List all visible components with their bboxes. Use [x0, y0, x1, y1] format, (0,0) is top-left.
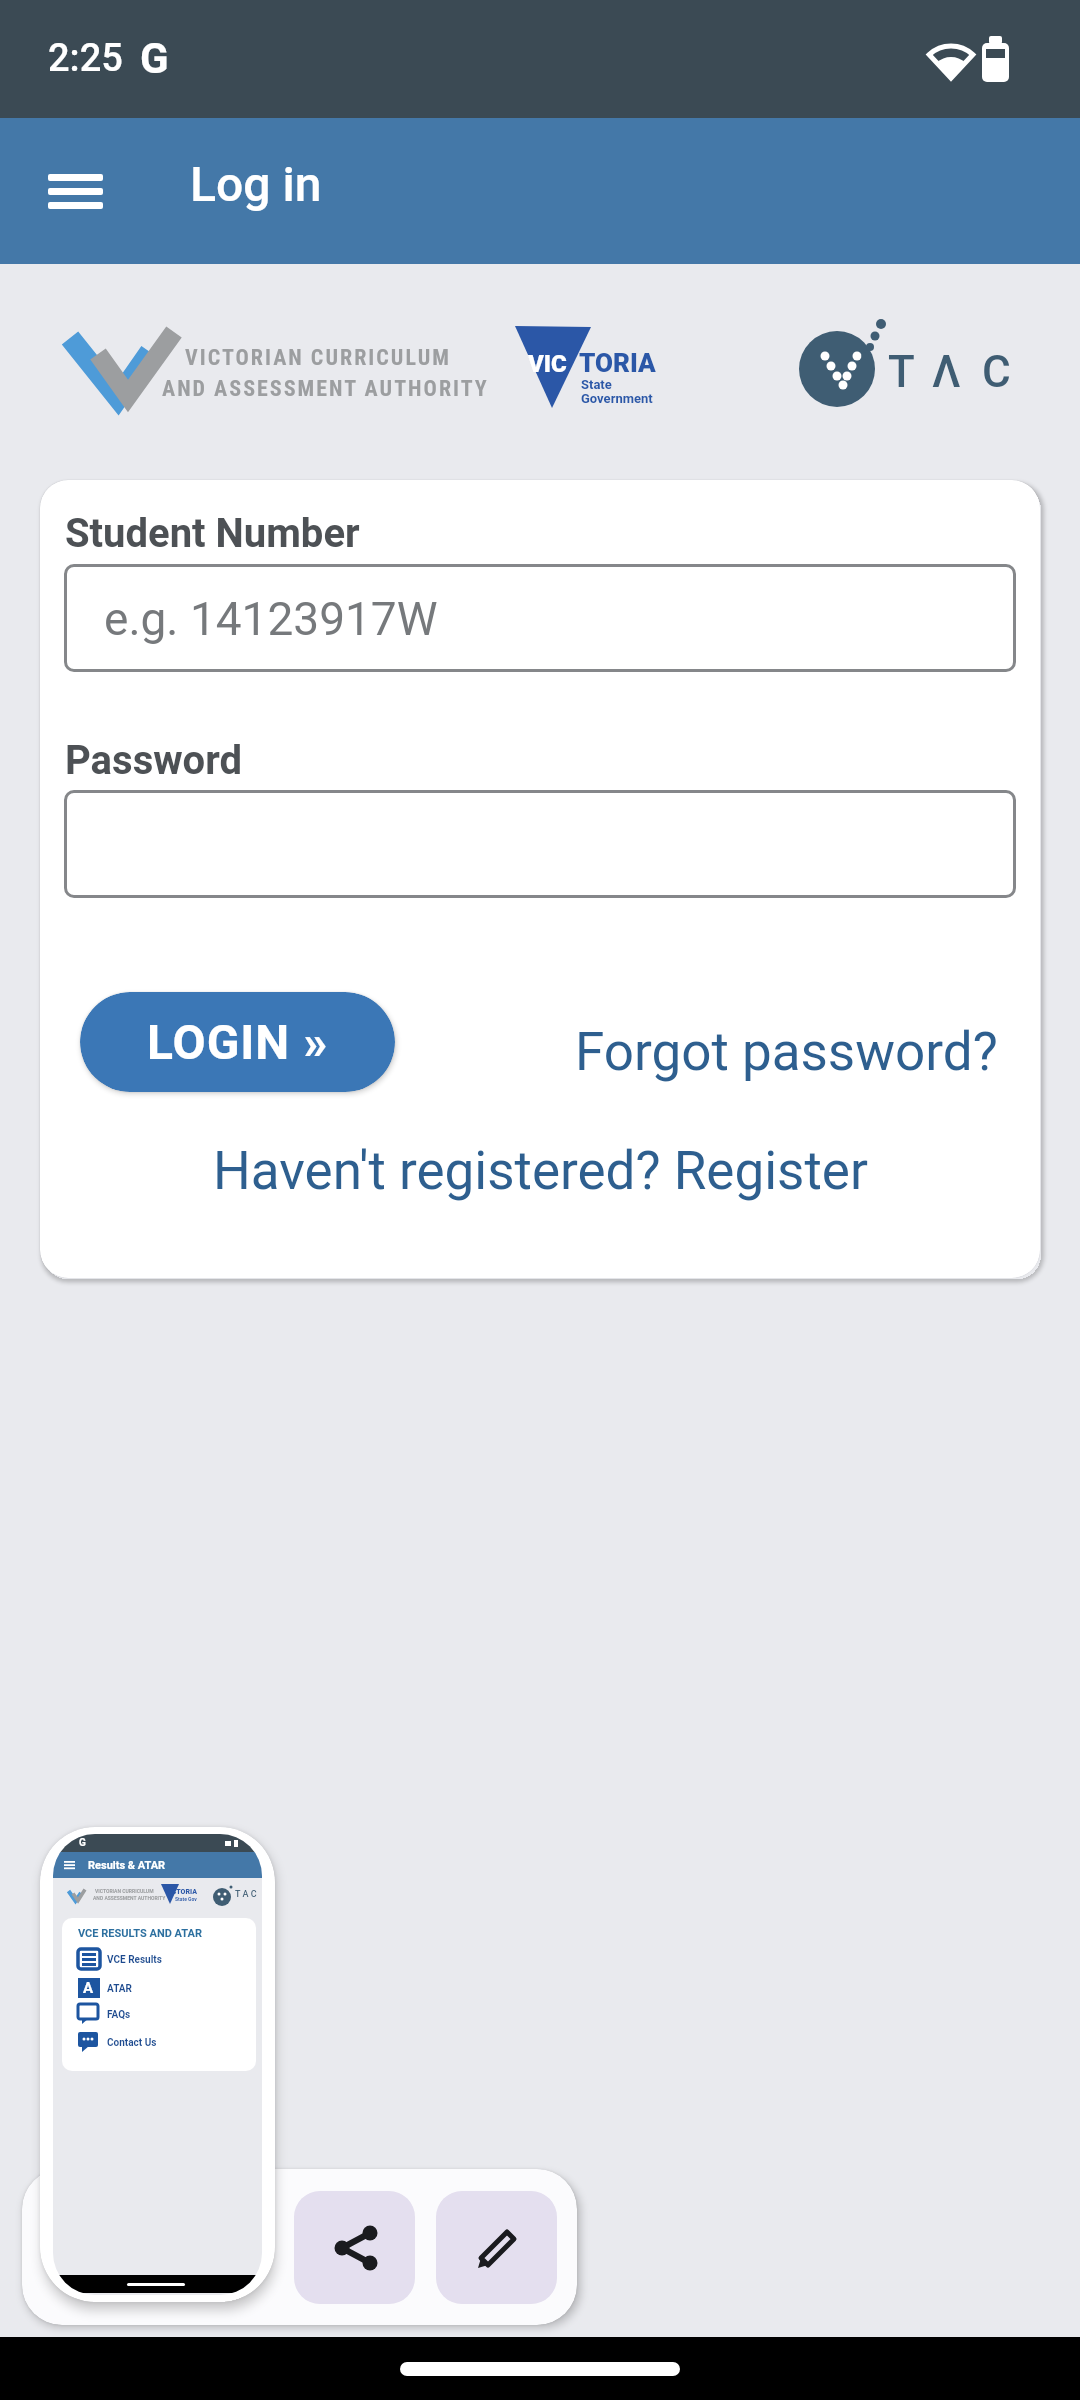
staticText: State Gov: [175, 1896, 197, 1902]
staticText: ATAR: [107, 1983, 132, 1995]
staticText: VICTORIA: [165, 1888, 197, 1896]
staticText: FAQs: [107, 2009, 131, 2021]
button[interactable]: e.g. 14123917W: [64, 564, 1016, 672]
staticText: Haven't registered? Register: [213, 1140, 868, 1202]
staticText: AND ASSESSMENT AUTHORITY: [162, 376, 489, 402]
staticText: TORIA: [579, 348, 656, 378]
button[interactable]: LOGIN »: [80, 992, 395, 1092]
staticText: e.g. 14123917W: [104, 592, 438, 646]
button[interactable]: [294, 2191, 415, 2304]
staticText: T A C: [235, 1889, 257, 1900]
staticText: Contact Us: [107, 2037, 157, 2049]
staticText: T: [888, 346, 915, 398]
button[interactable]: Forgot password?: [554, 1014, 1019, 1089]
staticText: VCE Results: [107, 1954, 162, 1966]
staticText: ?: [84, 2005, 90, 2018]
staticText: VICTORIAN CURRICULUM: [95, 1888, 154, 1894]
staticText: Log in: [190, 156, 322, 212]
staticText: VIC: [528, 350, 567, 378]
button[interactable]: [436, 2191, 557, 2304]
staticText: 2:25: [48, 36, 123, 81]
staticText: VICTORIAN CURRICULUM: [185, 345, 451, 371]
staticText: G: [140, 34, 169, 83]
staticText: Λ: [932, 346, 961, 398]
staticText: Forgot password?: [575, 1021, 998, 1083]
staticText: VCE RESULTS AND ATAR: [78, 1927, 202, 1940]
staticText: Student Number: [65, 510, 360, 557]
staticText: G: [79, 1837, 86, 1849]
staticText: AND ASSESSMENT AUTHORITY: [93, 1895, 166, 1901]
staticText: Results & ATAR: [88, 1859, 166, 1872]
staticText: State: [581, 377, 612, 392]
button[interactable]: [64, 790, 1016, 898]
staticText: Government: [581, 391, 653, 406]
button[interactable]: [28, 171, 123, 246]
staticText: C: [982, 346, 1011, 398]
staticText: LOGIN »: [147, 1014, 329, 1070]
staticText: A: [83, 1979, 94, 1997]
staticText: Password: [65, 737, 243, 784]
button[interactable]: Haven't registered? Register: [180, 1132, 900, 1210]
